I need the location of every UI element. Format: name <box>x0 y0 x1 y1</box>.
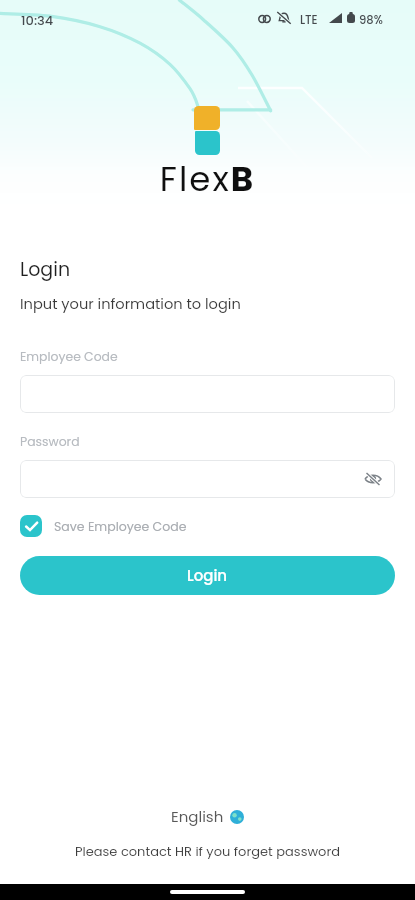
staticText: 98% <box>359 12 383 28</box>
other: Language <box>230 810 244 824</box>
staticText: Input your information to login <box>20 294 241 314</box>
staticText: Login <box>187 565 228 586</box>
staticText: Please contact HR if you forget password <box>75 842 341 860</box>
staticText: Login <box>20 256 71 283</box>
staticText: Employee Code <box>20 348 118 365</box>
staticText: Password <box>20 433 80 450</box>
button[interactable]: Show password <box>362 468 384 490</box>
button[interactable]: Login <box>20 556 395 595</box>
button[interactable]: English <box>171 806 244 827</box>
button[interactable]: Save Employee Code <box>20 515 187 537</box>
staticText: 10:34 <box>21 11 54 29</box>
staticText: English <box>171 806 224 827</box>
button[interactable] <box>20 375 395 413</box>
button[interactable]: Show password <box>20 460 395 498</box>
staticText: LTE <box>300 12 318 28</box>
staticText: Save Employee Code <box>54 518 187 535</box>
staticText: FlexB <box>0 155 415 203</box>
